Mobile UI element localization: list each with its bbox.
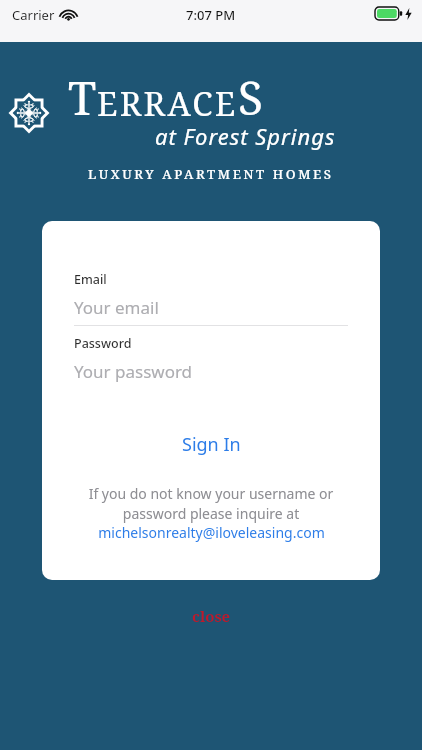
staticText: Your email	[74, 296, 159, 319]
staticText: T	[68, 66, 97, 129]
button[interactable]: michelsonrealty@iloveleasing.com	[74, 523, 348, 542]
staticText: LUXURY APARTMENT HOMES	[88, 165, 334, 183]
staticText: Sign In	[182, 432, 241, 457]
staticText: Carrier	[12, 6, 55, 24]
button[interactable]: Your email	[74, 295, 348, 319]
button[interactable]: Your password	[74, 359, 348, 383]
staticText: If you do not know your username or pass…	[74, 484, 348, 523]
button[interactable]: Sign In	[74, 427, 348, 462]
staticText: ERRACE	[97, 81, 238, 126]
staticText: Email	[74, 271, 107, 288]
button[interactable]: close	[166, 600, 257, 632]
staticText: 7:07 PM	[186, 6, 236, 24]
staticText: S	[238, 66, 264, 129]
staticText: at Forest Springs	[155, 121, 336, 151]
staticText: close	[192, 606, 231, 626]
staticText: Your password	[74, 360, 193, 383]
staticText: michelsonrealty@iloveleasing.com	[98, 523, 325, 542]
staticText: Password	[74, 335, 132, 352]
